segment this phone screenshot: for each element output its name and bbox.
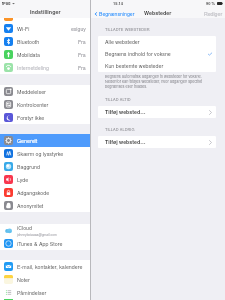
button[interactable]: Kun bestemte websteder (98, 60, 216, 72)
button[interactable]: Internetdeling (0, 61, 90, 74)
button[interactable]: Anonymitet (0, 199, 90, 212)
staticText: Generelt (17, 137, 38, 145)
button[interactable]: Forstyr ikke (0, 111, 90, 124)
staticText: Noter (17, 276, 30, 284)
staticText: Wi-Fi (17, 25, 30, 33)
staticText: Rediger (204, 10, 223, 17)
button[interactable]: Påmindelser (0, 286, 90, 299)
staticText: Fra (78, 38, 86, 45)
staticText: 15.14 (113, 0, 124, 6)
staticText: Tilføj websted… (105, 108, 146, 116)
staticText: Internetdeling (17, 64, 49, 72)
button[interactable]: Lyde (0, 173, 90, 186)
staticText: Tilføj websted… (105, 138, 146, 146)
staticText: TILLADTE WEBSTEDER (105, 27, 150, 33)
staticText: iTunes & App Store (17, 240, 63, 248)
staticText: iPad (2, 0, 11, 6)
staticText: Fra (78, 64, 86, 71)
staticText: Fra (78, 51, 86, 58)
button[interactable]: Mobildata (0, 48, 90, 61)
staticText: TILLAD ALTID (105, 97, 131, 103)
button[interactable]: Bluetooth (0, 35, 90, 48)
staticText: Lyde (17, 176, 29, 184)
button[interactable]: Tilføj websted… (98, 136, 216, 148)
staticText: 90 % (206, 0, 216, 6)
staticText: Begræns automatisk adgangen til webstede… (105, 74, 203, 89)
staticText: Mobildata (17, 51, 40, 59)
staticText: Indstillinger (30, 8, 61, 16)
staticText: Påmindelser (17, 289, 47, 297)
staticText: Meddelelser (17, 88, 46, 96)
staticText: TILLAD ALDRIG (105, 127, 135, 133)
staticText: Anonymitet (17, 202, 44, 210)
button[interactable]: Kontrolcenter (0, 98, 90, 111)
button[interactable]: Begræns indhold for voksne (98, 48, 216, 60)
staticText: Begrænsninger (99, 10, 135, 17)
staticText: Alle websteder (105, 38, 140, 46)
staticText: exiguy (71, 25, 86, 32)
staticText: Kun bestemte websteder (105, 62, 164, 70)
button[interactable]: Adgangskode (0, 186, 90, 199)
button[interactable]: Skærm og lysstyrke (0, 147, 90, 160)
button[interactable]: Alle websteder (98, 36, 216, 48)
button[interactable]: Noter (0, 273, 90, 286)
button[interactable]: E-mail, kontakter, kalendere (0, 260, 90, 273)
button[interactable]: Tilføj websted… (98, 106, 216, 118)
staticText: Websteder (144, 9, 172, 17)
button[interactable]: Baggrund (0, 160, 90, 173)
staticText: E-mail, kontakter, kalendere (17, 263, 83, 271)
button[interactable]: Wi-Fi (0, 22, 90, 35)
staticText: Baggrund (17, 163, 40, 171)
staticText: Bluetooth (17, 38, 40, 46)
button[interactable]: Rediger (202, 9, 225, 18)
staticText: Skærm og lysstyrke (17, 150, 64, 158)
staticText: Begræns indhold for voksne (105, 50, 171, 58)
staticText: iCloud (17, 224, 33, 232)
button[interactable]: Begrænsninger (91, 9, 137, 18)
button[interactable]: Beskeder (0, 299, 90, 300)
button[interactable]: iCloud (0, 224, 90, 237)
staticText: johnnyboiaaaa@gmail.com (17, 232, 57, 237)
button[interactable]: iTunes & App Store (0, 237, 90, 250)
button[interactable]: Meddelelser (0, 85, 90, 98)
staticText: Adgangskode (17, 189, 50, 197)
staticText: Forstyr ikke (17, 114, 45, 122)
button[interactable]: Generelt (0, 134, 90, 147)
staticText: Kontrolcenter (17, 101, 49, 109)
